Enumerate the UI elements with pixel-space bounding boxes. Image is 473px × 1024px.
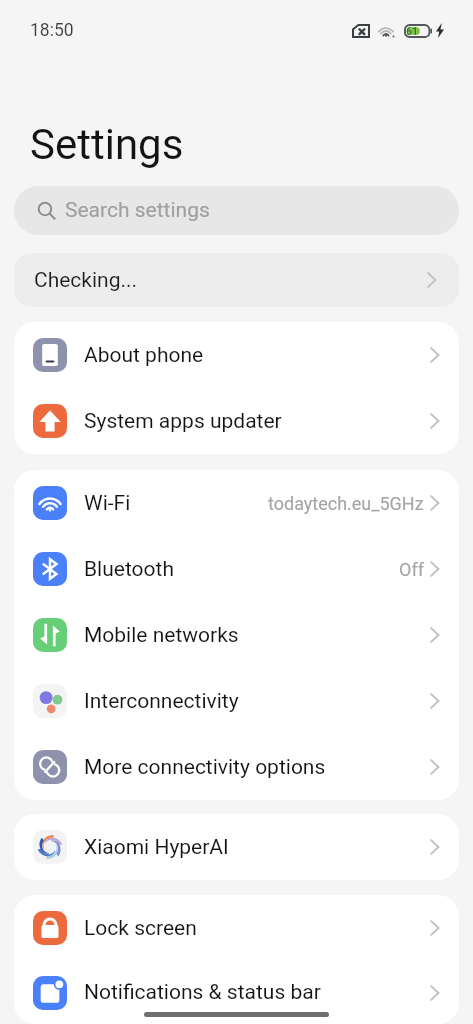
button[interactable]: Search settings [14,186,459,235]
button[interactable]: Mobile networks [14,602,459,668]
button[interactable]: Wi-Fi [14,470,459,536]
button[interactable]: About phone [14,322,459,388]
staticText: Lock screen [84,916,197,941]
button[interactable]: More connectivity options [14,734,459,800]
staticText: System apps updater [84,409,282,434]
button[interactable]: Checking... [14,253,459,307]
staticText: More connectivity options [84,755,326,780]
button[interactable]: Xiaomi HyperAI [14,814,459,880]
staticText: Notifications & status bar [84,980,321,1005]
button[interactable]: Bluetooth [14,536,459,602]
staticText: Mobile networks [84,623,239,648]
staticText: Off [399,559,424,580]
staticText: About phone [84,343,204,368]
button[interactable]: Notifications & status bar [14,961,459,1024]
staticText: Interconnectivity [84,689,239,714]
staticText: Wi-Fi [84,491,131,516]
button[interactable]: Lock screen [14,895,459,961]
button[interactable]: System apps updater [14,388,459,454]
staticText: Checking... [34,268,138,293]
staticText: Bluetooth [84,557,174,582]
staticText: Search settings [65,198,210,223]
staticText: 61 [406,25,418,37]
staticText: todaytech.eu_5GHz [268,493,424,514]
staticText: Settings [30,120,184,169]
button[interactable]: Interconnectivity [14,668,459,734]
staticText: 18:50 [30,20,74,41]
staticText: Xiaomi HyperAI [84,835,229,860]
